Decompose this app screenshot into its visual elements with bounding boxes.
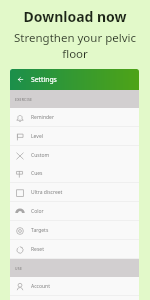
button[interactable]: Ultra discreet [10,183,139,202]
button[interactable]: Reminder [10,108,139,127]
button[interactable]: Custom [10,146,139,165]
button[interactable]: Back [15,74,26,85]
button[interactable]: Back [10,69,139,90]
staticText: Download now [23,7,127,26]
staticText: Custom [31,152,50,159]
staticText: Account [31,283,51,290]
staticText: EXERCISE [15,97,33,102]
staticText: Cues [31,170,43,177]
button[interactable]: Targets [10,221,139,240]
staticText: Reset [31,246,44,253]
staticText: Ultra discreet [31,189,63,196]
staticText: USE [15,266,23,271]
staticText: Settings [31,75,57,84]
button[interactable]: Level [10,127,139,146]
staticText: Level [31,133,43,140]
button[interactable]: Cues [10,164,139,183]
staticText: Color [31,208,44,215]
staticText: Strengthen your pelvic floor [11,30,139,61]
staticText: Reminder [31,114,54,121]
button[interactable]: Color [10,202,139,221]
button[interactable]: Reset [10,240,139,259]
staticText: Targets [31,227,49,234]
button[interactable]: Account [10,277,139,296]
